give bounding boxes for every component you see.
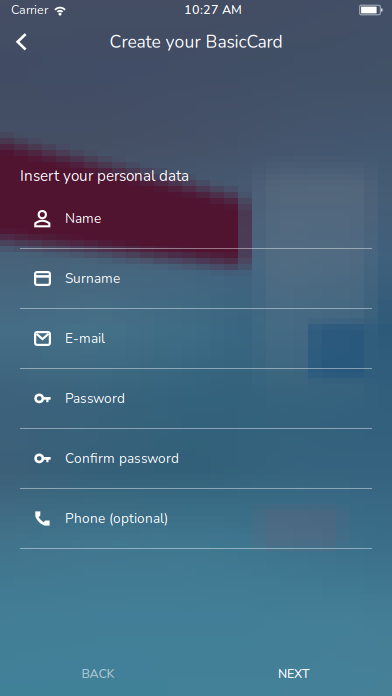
staticText: NEXT xyxy=(278,665,310,682)
staticText: Surname xyxy=(65,269,120,288)
staticText: Phone (optional) xyxy=(65,509,168,528)
button[interactable]: E-mail xyxy=(0,309,392,369)
staticText: E-mail xyxy=(65,329,105,348)
button[interactable]: NEXT xyxy=(196,652,392,696)
staticText: Password xyxy=(65,389,125,408)
button[interactable]: Phone (optional) xyxy=(0,489,392,549)
button[interactable]: BACK xyxy=(0,652,196,696)
button[interactable]: Surname xyxy=(0,249,392,309)
staticText: Create your BasicCard xyxy=(109,30,282,54)
button[interactable]: Name xyxy=(0,189,392,249)
staticText: Carrier xyxy=(11,1,48,19)
button[interactable]: Confirm password xyxy=(0,429,392,489)
button[interactable]: Password xyxy=(0,369,392,429)
button[interactable]: Back xyxy=(0,20,60,64)
staticText: Name xyxy=(65,209,101,228)
staticText: BACK xyxy=(81,665,114,682)
staticText: 10:27 AM xyxy=(184,1,242,19)
staticText: Insert your personal data xyxy=(20,166,189,186)
staticText: Confirm password xyxy=(65,449,179,468)
